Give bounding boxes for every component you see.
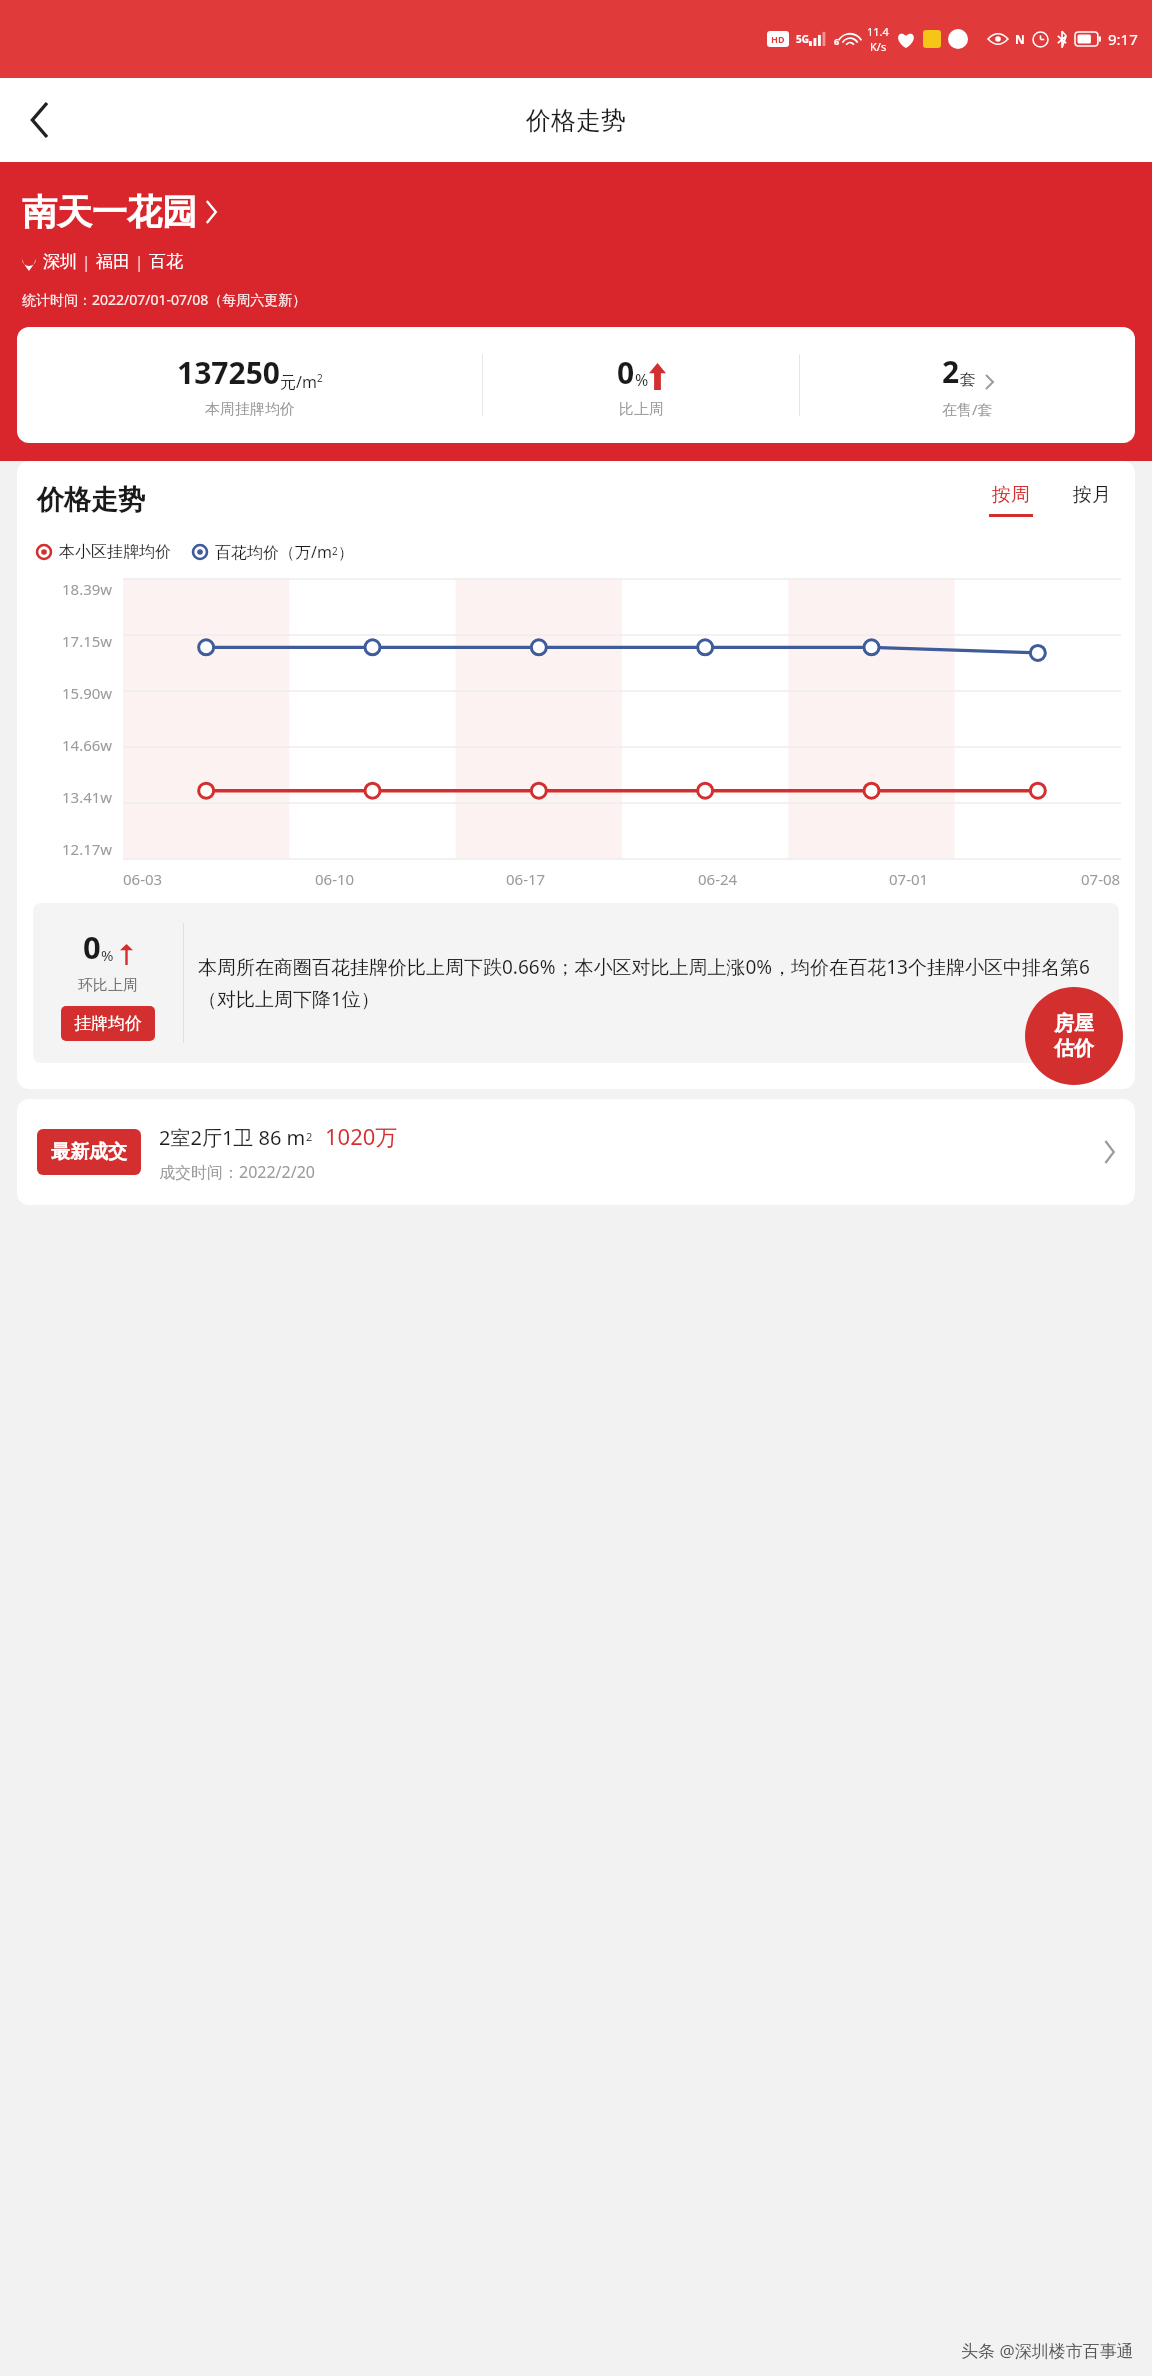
staticText: 14.66w: [62, 735, 113, 755]
staticText: |: [130, 250, 149, 273]
staticText: 最新成交: [51, 1140, 127, 1164]
staticText: 2室2厅1卫 86 m: [159, 1124, 306, 1151]
staticText: 06-24: [698, 869, 738, 889]
staticText: 1020万: [325, 1121, 398, 1151]
staticText: 按月: [1073, 483, 1111, 507]
staticText: 0: [83, 926, 101, 968]
staticText: 5G: [796, 32, 809, 46]
staticText: 本周挂牌均价: [205, 400, 295, 419]
button[interactable]: 按周: [989, 483, 1033, 517]
staticText: ）: [338, 543, 354, 563]
staticText: 18.39w: [62, 579, 113, 599]
staticText: |: [77, 250, 96, 273]
staticText: 07-08: [1081, 869, 1121, 889]
staticText: 估价: [1054, 1036, 1094, 1061]
staticText: 价格走势: [526, 105, 626, 136]
staticText: 11.4: [867, 24, 889, 39]
staticText: 13.41w: [62, 787, 113, 807]
staticText: 2: [332, 544, 338, 558]
staticText: 17.15w: [62, 631, 113, 651]
staticText: 套: [960, 370, 976, 390]
button[interactable]: 按月: [1073, 483, 1111, 517]
staticText: 深圳: [43, 251, 77, 272]
button[interactable]: 2: [800, 351, 1135, 419]
staticText: 6: [834, 35, 840, 47]
staticText: 12.17w: [62, 839, 113, 859]
staticText: N: [1015, 31, 1025, 47]
staticText: 0: [617, 352, 635, 393]
staticText: %: [101, 945, 114, 965]
staticText: 元/m: [280, 371, 317, 393]
button[interactable]: 最新成交: [17, 1099, 1135, 1205]
staticText: 价格走势: [37, 483, 145, 517]
staticText: 统计时间：2022/07/01-07/08（每周六更新）: [22, 290, 307, 309]
staticText: 06-03: [123, 869, 163, 889]
staticText: 06-10: [315, 869, 355, 889]
staticText: 9:17: [1108, 29, 1138, 49]
staticText: %: [635, 369, 649, 391]
staticText: 在售/套: [942, 399, 993, 419]
staticText: 本周所在商圈百花挂牌价比上周下跌0.66%；本小区对比上周上涨0%，均价在百花1…: [198, 954, 1111, 1012]
button[interactable]: Back: [14, 94, 66, 146]
staticText: 成交时间：2022/2/20: [159, 1161, 315, 1183]
staticText: 2: [306, 1129, 313, 1144]
staticText: 137250: [177, 352, 280, 393]
staticText: 07-01: [889, 869, 929, 889]
staticText: 百花: [149, 251, 183, 272]
staticText: 比上周: [619, 400, 664, 419]
staticText: K/s: [870, 39, 887, 54]
staticText: HD: [771, 33, 785, 45]
staticText: 南天一花园: [22, 190, 197, 234]
button[interactable]: 房屋: [1025, 987, 1123, 1085]
staticText: 15.90w: [62, 683, 113, 703]
staticText: 2: [942, 351, 960, 392]
staticText: 按周: [992, 483, 1030, 507]
staticText: 环比上周: [78, 976, 138, 995]
staticText: 挂牌均价: [74, 1013, 142, 1034]
staticText: 06-17: [506, 869, 546, 889]
button[interactable]: 0: [483, 352, 799, 419]
staticText: 房屋: [1054, 1011, 1094, 1036]
button[interactable]: 137250: [17, 352, 482, 419]
staticText: 2: [317, 371, 323, 385]
button[interactable]: 南天一花园: [22, 190, 217, 234]
staticText: 百花均价（万/m: [215, 541, 332, 563]
staticText: 头条 @深圳楼市百事通: [961, 2339, 1134, 2362]
staticText: 本小区挂牌均价: [59, 542, 171, 562]
staticText: 福田: [96, 251, 130, 272]
